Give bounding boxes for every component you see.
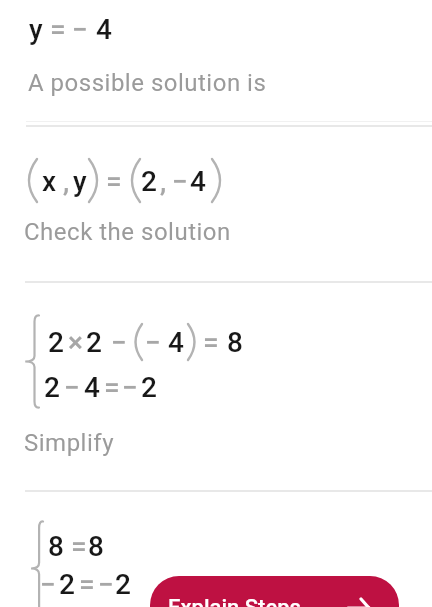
staticText: − [111,326,127,359]
staticText: − [122,371,138,404]
staticText: Explain Steps [168,595,301,607]
staticText: 4 [168,326,184,359]
staticText: A possible solution is [28,69,267,97]
staticText: 4 [190,165,206,198]
staticText: x [42,165,57,198]
staticText: 2 [86,326,102,359]
staticText: = [106,165,122,198]
staticText: 2 [44,371,60,404]
staticText: = [71,530,87,563]
staticText: − [172,165,188,198]
staticText: 2 [115,568,131,601]
staticText: 2 [48,326,64,359]
staticText: 2 [141,165,157,198]
staticText: 2 [59,568,75,601]
staticText: − [145,326,161,359]
staticText: = [203,326,219,359]
staticText: Check the solution [24,218,231,246]
button[interactable]: Explain Steps [150,576,399,607]
staticText: , [160,165,167,198]
staticText: y [29,13,43,46]
staticText: 8 [88,530,104,563]
staticText: = [50,13,66,46]
staticText: × [68,326,83,359]
staticText: − [72,13,88,46]
staticText: 8 [48,530,64,563]
staticText: = [104,371,120,404]
staticText: 4 [96,13,112,46]
staticText: − [40,568,56,601]
staticText: Simplify [24,429,114,457]
staticText: y [73,165,87,198]
staticText: − [64,371,80,404]
staticText: 8 [227,326,243,359]
staticText: − [98,568,114,601]
staticText: = [79,568,95,601]
staticText: , [63,165,70,198]
staticText: 2 [141,371,157,404]
staticText: 4 [84,371,100,404]
